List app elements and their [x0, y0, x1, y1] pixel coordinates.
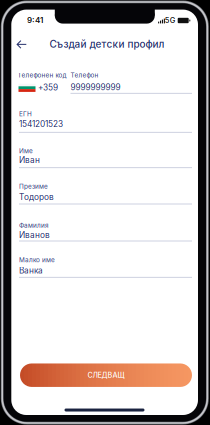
staticText: Иванов	[19, 230, 50, 240]
staticText: +359	[38, 83, 58, 93]
staticText: Създай детски профил	[49, 38, 164, 50]
staticText: Малко име	[19, 256, 55, 264]
staticText: Иван	[19, 155, 40, 165]
staticText: 5G	[165, 16, 176, 25]
staticText: СЛЕДВАЩ	[87, 371, 124, 379]
button[interactable]: СЛЕДВАЩ	[20, 363, 192, 387]
staticText: Телефон	[70, 71, 98, 79]
staticText: 9999999999	[70, 82, 120, 92]
staticText: 9:41	[27, 15, 43, 25]
staticText: Телефонен код	[17, 71, 66, 79]
staticText: Презиме	[19, 183, 48, 190]
button[interactable]: Назад	[13, 35, 31, 53]
staticText: Тодоров	[19, 192, 54, 202]
staticText: ЕГН	[19, 110, 32, 118]
staticText: Фамилия	[19, 222, 49, 229]
staticText: Име	[19, 147, 33, 155]
staticText: 1541201523	[19, 119, 63, 129]
staticText: Ванка	[19, 265, 43, 275]
